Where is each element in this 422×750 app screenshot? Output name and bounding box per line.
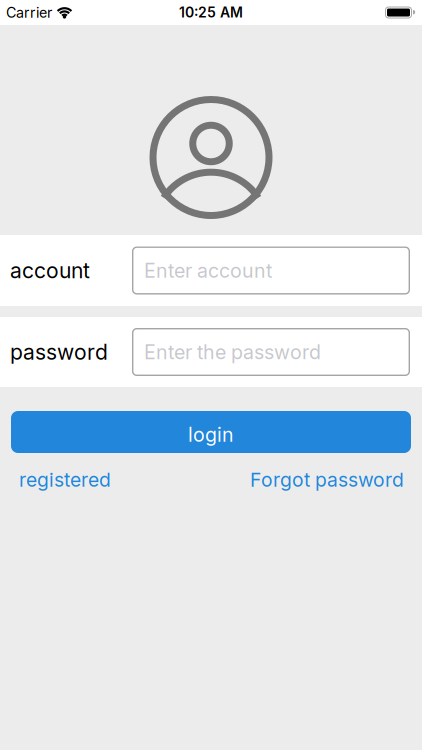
staticText: 10:25 AM [179,4,243,21]
button[interactable]: registered [19,468,111,491]
button[interactable]: login [11,411,411,453]
staticText: Enter account [144,259,272,282]
staticText: account [10,258,90,283]
staticText: Carrier [6,4,52,21]
button[interactable]: Enter account [132,246,410,294]
button[interactable]: Enter the password [132,328,410,376]
staticText: Forgot password [250,468,404,491]
button[interactable]: Forgot password [250,468,404,491]
staticText: Enter the password [144,340,321,364]
staticText: registered [19,468,111,491]
staticText: password [10,339,108,365]
staticText: login [188,423,234,446]
